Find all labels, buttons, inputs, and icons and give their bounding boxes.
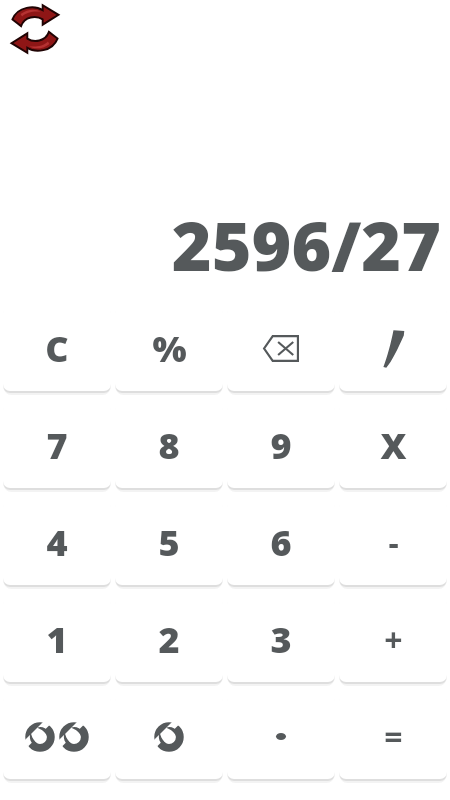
button[interactable]: + xyxy=(339,597,447,682)
staticText: C xyxy=(45,324,69,373)
staticText: 4 xyxy=(46,518,68,567)
staticText: X xyxy=(380,421,407,470)
button[interactable]: 4 xyxy=(3,500,111,585)
button[interactable]: 3 xyxy=(227,597,335,682)
staticText: = xyxy=(384,715,403,759)
button[interactable]: 6 xyxy=(227,500,335,585)
button[interactable]: 1 xyxy=(3,597,111,682)
button[interactable]: 7 xyxy=(3,403,111,488)
staticText: 7 xyxy=(46,421,68,470)
button[interactable]: Divide xyxy=(339,306,447,391)
button[interactable]: X xyxy=(339,403,447,488)
button[interactable]: 8 xyxy=(115,403,223,488)
staticText: 2596/27 xyxy=(171,198,441,290)
button[interactable]: 5 xyxy=(115,500,223,585)
button[interactable]: % xyxy=(115,306,223,391)
button[interactable]: Double zero xyxy=(3,694,111,779)
staticText: 5 xyxy=(158,518,180,567)
button[interactable]: 9 xyxy=(227,403,335,488)
staticText: % xyxy=(152,324,187,373)
button[interactable]: = xyxy=(339,694,447,779)
staticText: 9 xyxy=(270,421,292,470)
button[interactable]: Decimal point xyxy=(227,694,335,779)
button[interactable]: C xyxy=(3,306,111,391)
staticText: 2 xyxy=(158,615,180,664)
staticText: 3 xyxy=(270,615,292,664)
staticText: 8 xyxy=(158,421,180,470)
staticText: + xyxy=(384,618,403,662)
staticText: - xyxy=(388,521,399,565)
staticText: 6 xyxy=(270,518,292,567)
button[interactable]: - xyxy=(339,500,447,585)
button[interactable]: 2 xyxy=(115,597,223,682)
button[interactable]: Zero xyxy=(115,694,223,779)
staticText: 1 xyxy=(46,615,68,664)
button[interactable]: Swap xyxy=(9,3,61,55)
button[interactable]: Backspace xyxy=(227,306,335,391)
